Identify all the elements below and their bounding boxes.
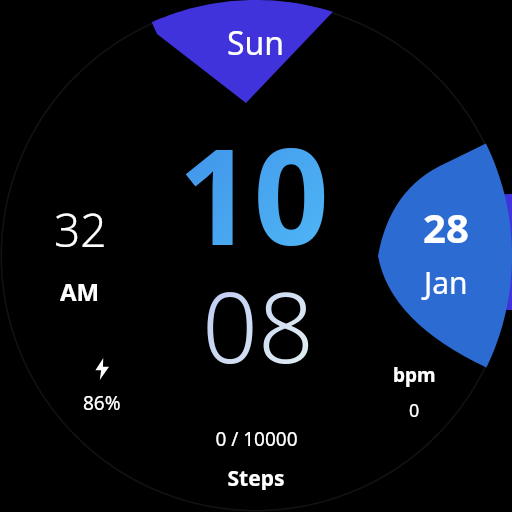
staticText: Jan	[424, 262, 468, 303]
button[interactable]: Sun	[201, 20, 311, 66]
button[interactable]: 28	[398, 200, 494, 310]
button[interactable]: bpm	[372, 362, 456, 422]
staticText: 86%	[83, 390, 121, 416]
staticText: Steps	[227, 464, 285, 490]
staticText: Sun	[227, 21, 285, 65]
staticText: 28	[423, 200, 469, 254]
button[interactable]: 0 / 10000	[161, 426, 351, 490]
staticText: 0	[409, 398, 420, 422]
staticText: 10	[178, 104, 330, 284]
staticText: 32	[54, 198, 107, 261]
button[interactable]: 32	[32, 198, 128, 308]
staticText: 08	[202, 258, 314, 391]
staticText: AM	[60, 275, 100, 308]
staticText: 0 / 10000	[215, 426, 298, 452]
button[interactable]: Battery	[62, 358, 142, 420]
staticText: bpm	[393, 362, 436, 388]
